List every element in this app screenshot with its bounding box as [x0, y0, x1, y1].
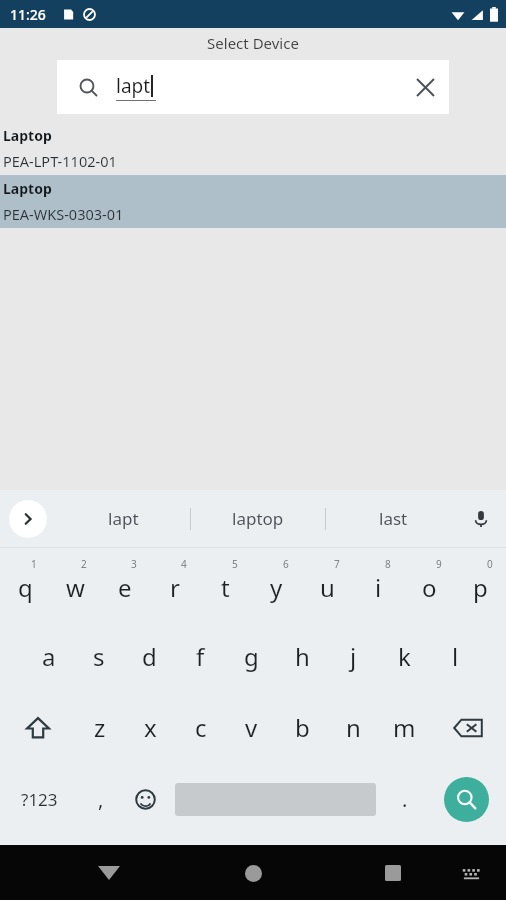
staticText: z: [94, 711, 106, 744]
staticText: .: [402, 786, 408, 813]
button[interactable]: .: [383, 763, 427, 835]
button[interactable]: 4: [150, 548, 200, 621]
button[interactable]: a: [24, 621, 74, 692]
button[interactable]: Voice input: [464, 502, 498, 536]
button[interactable]: Backspace: [430, 692, 506, 763]
button[interactable]: Search: [57, 60, 449, 114]
staticText: 8: [385, 557, 391, 571]
staticText: e: [118, 571, 132, 604]
staticText: PEA-LPT-1102-01: [3, 151, 117, 171]
staticText: 3: [131, 557, 137, 571]
button[interactable]: Laptop: [0, 122, 506, 175]
staticText: h: [295, 640, 310, 673]
button[interactable]: More suggestions: [9, 500, 47, 538]
staticText: o: [422, 571, 437, 604]
staticText: 6: [283, 557, 289, 571]
button[interactable]: 8: [353, 548, 404, 621]
staticText: l: [452, 640, 459, 673]
staticText: c: [195, 711, 207, 744]
staticText: 2: [81, 557, 87, 571]
staticText: j: [350, 640, 357, 673]
staticText: lapt: [108, 507, 139, 530]
button[interactable]: j: [328, 621, 379, 692]
staticText: y: [270, 571, 283, 604]
staticText: lapt: [116, 73, 151, 99]
staticText: last: [379, 507, 408, 530]
button[interactable]: 7: [302, 548, 353, 621]
button[interactable]: 0: [455, 548, 506, 621]
staticText: f: [196, 640, 205, 673]
button[interactable]: Recents: [372, 852, 414, 894]
button[interactable]: Emoji: [123, 763, 167, 835]
button[interactable]: z: [75, 692, 125, 763]
staticText: r: [170, 571, 180, 604]
staticText: ,: [98, 786, 104, 813]
staticText: b: [295, 711, 310, 744]
staticText: PEA-WKS-0303-01: [3, 204, 124, 224]
button[interactable]: Space: [167, 763, 383, 835]
other: Search: [79, 78, 98, 97]
staticText: g: [244, 640, 259, 673]
staticText: 9: [436, 557, 442, 571]
button[interactable]: laptop: [191, 490, 325, 547]
button[interactable]: Clear: [405, 67, 445, 107]
button[interactable]: Home: [232, 852, 274, 894]
staticText: Laptop: [3, 126, 52, 145]
button[interactable]: k: [379, 621, 430, 692]
staticText: 7: [334, 557, 340, 571]
button[interactable]: b: [277, 692, 328, 763]
button[interactable]: lapt: [56, 490, 190, 547]
staticText: ?123: [21, 788, 58, 811]
button[interactable]: 1: [0, 548, 50, 621]
button[interactable]: ,: [79, 763, 123, 835]
button[interactable]: Switch keyboard: [454, 856, 488, 890]
staticText: Laptop: [3, 179, 52, 198]
staticText: 11:26: [10, 5, 46, 24]
staticText: d: [142, 640, 157, 673]
staticText: t: [221, 571, 230, 604]
button[interactable]: d: [124, 621, 175, 692]
button[interactable]: Shift: [0, 692, 75, 763]
staticText: 5: [232, 557, 238, 571]
staticText: v: [245, 711, 258, 744]
staticText: w: [66, 571, 85, 604]
staticText: Select Device: [207, 33, 299, 53]
staticText: 1: [31, 557, 37, 571]
button[interactable]: 3: [100, 548, 150, 621]
staticText: p: [473, 571, 488, 604]
staticText: s: [93, 640, 105, 673]
staticText: q: [18, 571, 33, 604]
button[interactable]: ?123: [0, 763, 79, 835]
button[interactable]: f: [175, 621, 226, 692]
button[interactable]: l: [430, 621, 481, 692]
staticText: k: [398, 640, 411, 673]
button[interactable]: last: [326, 490, 460, 547]
button[interactable]: s: [74, 621, 124, 692]
staticText: laptop: [232, 507, 284, 530]
staticText: u: [320, 571, 335, 604]
staticText: 0: [487, 557, 493, 571]
staticText: x: [144, 711, 157, 744]
button[interactable]: Back: [88, 852, 130, 894]
staticText: 4: [181, 557, 187, 571]
button[interactable]: 5: [200, 548, 251, 621]
button[interactable]: 6: [251, 548, 302, 621]
button[interactable]: 2: [50, 548, 100, 621]
button[interactable]: m: [379, 692, 430, 763]
button[interactable]: h: [277, 621, 328, 692]
button[interactable]: Search: [427, 763, 506, 835]
button[interactable]: x: [125, 692, 175, 763]
button[interactable]: 9: [404, 548, 455, 621]
staticText: a: [42, 640, 56, 673]
button[interactable]: g: [226, 621, 277, 692]
staticText: i: [375, 571, 382, 604]
staticText: n: [346, 711, 361, 744]
staticText: m: [393, 711, 416, 744]
button[interactable]: v: [226, 692, 277, 763]
button[interactable]: c: [175, 692, 226, 763]
button[interactable]: n: [328, 692, 379, 763]
button[interactable]: Laptop: [0, 175, 506, 228]
